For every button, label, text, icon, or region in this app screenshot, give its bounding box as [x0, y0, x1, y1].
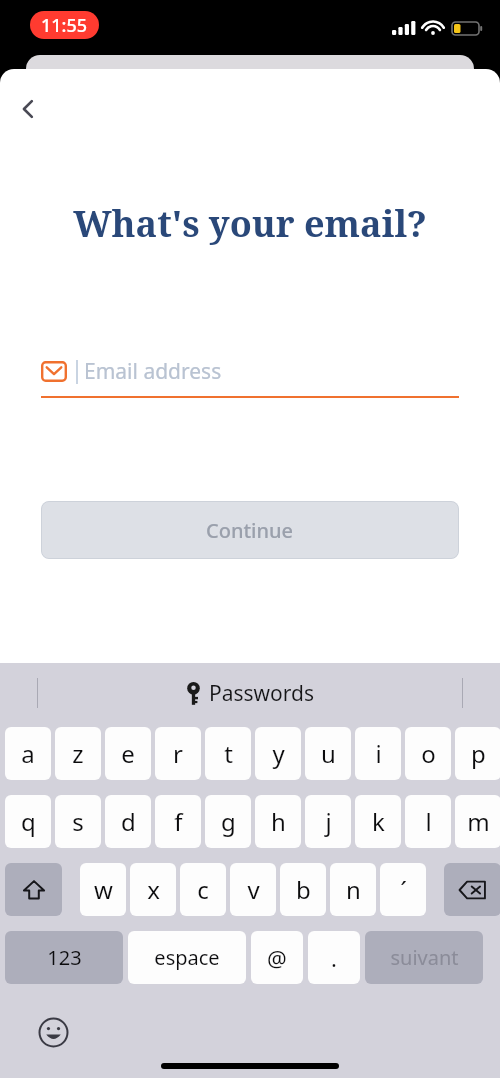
button[interactable]: Continue: [41, 501, 459, 559]
button[interactable]: p: [455, 727, 500, 780]
button[interactable]: c: [180, 863, 226, 916]
button[interactable]: h: [255, 795, 301, 848]
button[interactable]: t: [205, 727, 251, 780]
button[interactable]: x: [130, 863, 176, 916]
staticText: r: [173, 737, 183, 770]
button[interactable]: @: [251, 931, 303, 984]
button[interactable]: a: [5, 727, 51, 780]
staticText: g: [221, 805, 236, 838]
staticText: q: [21, 805, 36, 838]
staticText: k: [372, 805, 385, 838]
button[interactable]: Back: [6, 87, 50, 131]
staticText: b: [296, 873, 311, 906]
button[interactable]: j: [305, 795, 351, 848]
staticText: l: [425, 805, 432, 838]
staticText: suivant: [390, 944, 459, 971]
button[interactable]: e: [105, 727, 151, 780]
staticText: a: [21, 737, 35, 770]
button[interactable]: g: [205, 795, 251, 848]
staticText: i: [375, 737, 382, 770]
button[interactable]: suivant: [365, 931, 483, 984]
button[interactable]: w: [80, 863, 126, 916]
staticText: Continue: [206, 517, 294, 544]
button[interactable]: d: [105, 795, 151, 848]
staticText: x: [147, 873, 160, 906]
button[interactable]: Emoji: [32, 1011, 74, 1053]
staticText: z: [72, 737, 84, 770]
button[interactable]: 123: [5, 931, 123, 984]
button[interactable]: s: [55, 795, 101, 848]
button[interactable]: l: [405, 795, 451, 848]
staticText: t: [224, 737, 233, 770]
staticText: f: [174, 805, 183, 838]
staticText: h: [271, 805, 286, 838]
button[interactable]: ´: [380, 863, 426, 916]
button[interactable]: v: [230, 863, 276, 916]
staticText: Passwords: [209, 679, 315, 708]
button[interactable]: m: [455, 795, 500, 848]
staticText: y: [272, 737, 285, 770]
button[interactable]: Shift: [5, 863, 62, 916]
button[interactable]: z: [55, 727, 101, 780]
button[interactable]: .: [308, 931, 360, 984]
staticText: p: [471, 737, 486, 770]
staticText: What's your email?: [73, 199, 427, 248]
staticText: n: [346, 873, 361, 906]
button[interactable]: q: [5, 795, 51, 848]
button[interactable]: o: [405, 727, 451, 780]
staticText: c: [197, 873, 209, 906]
staticText: 123: [47, 944, 82, 971]
staticText: v: [247, 873, 260, 906]
button[interactable]: Email address: [41, 357, 459, 398]
staticText: m: [467, 805, 490, 838]
staticText: w: [94, 873, 113, 906]
button[interactable]: espace: [128, 931, 246, 984]
staticText: o: [421, 737, 436, 770]
button[interactable]: Backspace: [444, 863, 500, 916]
staticText: espace: [154, 944, 220, 971]
staticText: s: [72, 805, 84, 838]
staticText: ´: [400, 873, 407, 906]
button[interactable]: n: [330, 863, 376, 916]
staticText: e: [121, 737, 135, 770]
staticText: d: [121, 805, 136, 838]
staticText: @: [267, 943, 287, 973]
staticText: u: [321, 737, 336, 770]
button[interactable]: f: [155, 795, 201, 848]
button[interactable]: y: [255, 727, 301, 780]
staticText: .: [331, 943, 337, 973]
button[interactable]: Passwords: [178, 679, 323, 708]
button[interactable]: b: [280, 863, 326, 916]
button[interactable]: r: [155, 727, 201, 780]
staticText: j: [325, 805, 332, 838]
staticText: Email address: [84, 357, 222, 386]
staticText: 11:55: [41, 13, 88, 38]
button[interactable]: i: [355, 727, 401, 780]
button[interactable]: u: [305, 727, 351, 780]
button[interactable]: k: [355, 795, 401, 848]
